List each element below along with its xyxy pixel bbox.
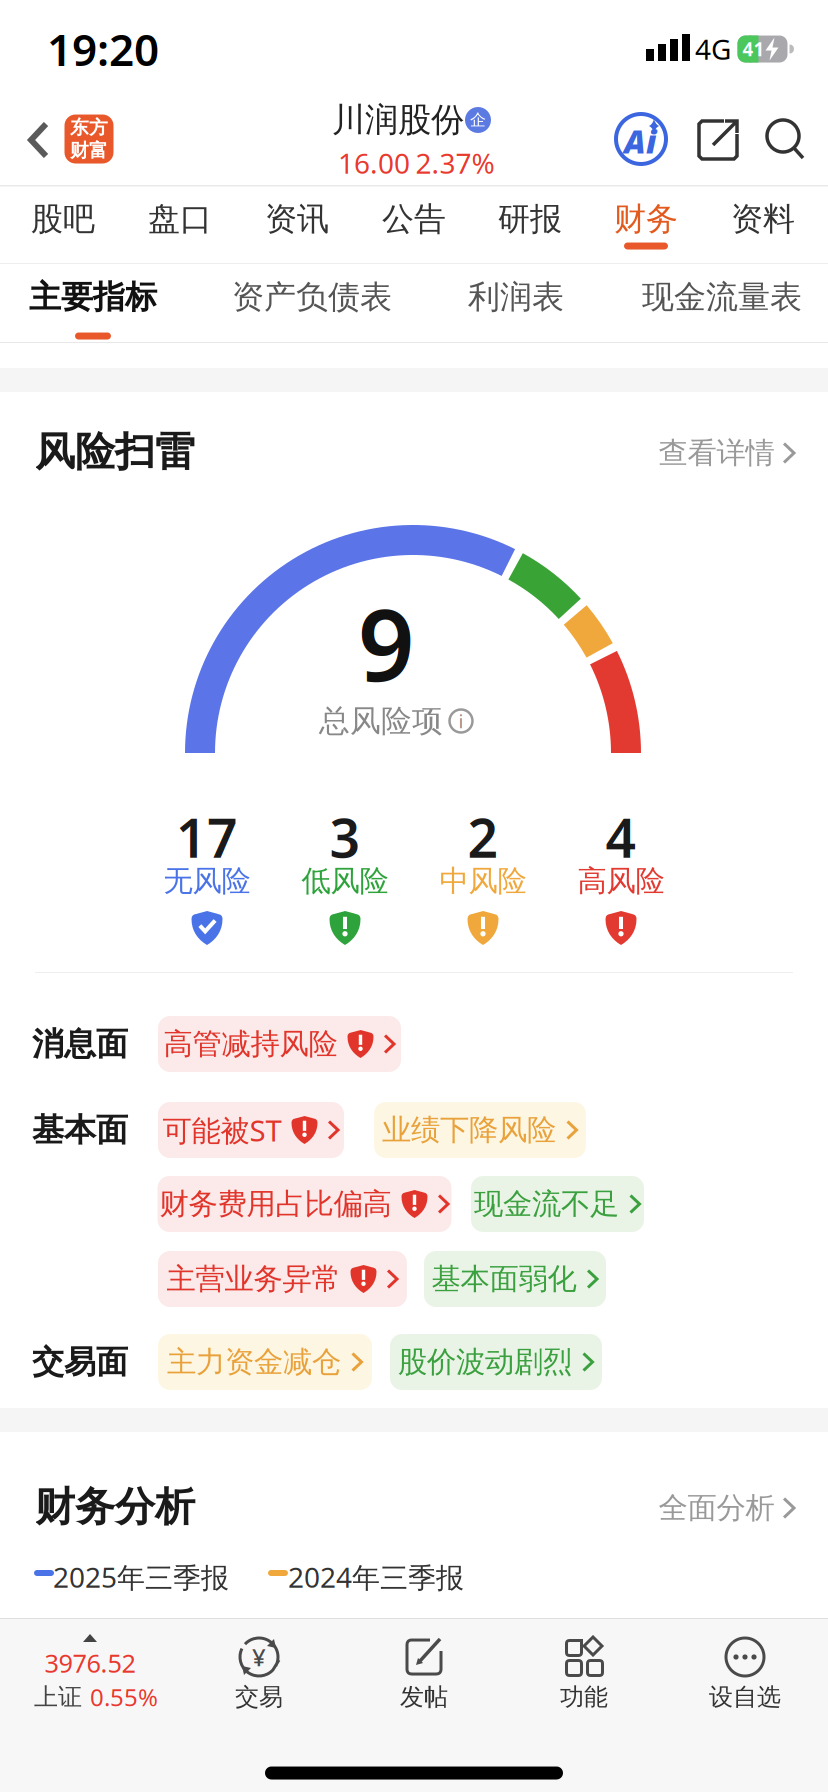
staticText: 基本面 — [32, 1110, 128, 1150]
staticText: 财富 — [70, 139, 108, 162]
staticText: 中风险 — [439, 863, 526, 899]
button[interactable]: 业绩下降风险 — [374, 1102, 586, 1158]
staticText: 财务费用占比偏高 — [159, 1186, 391, 1222]
staticText: 财务 — [614, 199, 678, 239]
staticText: 总风险项 — [319, 702, 443, 740]
staticText: 股吧 — [31, 199, 95, 239]
staticText: 高风险 — [577, 863, 664, 899]
staticText: i — [458, 709, 463, 733]
staticText: 无风险 — [163, 863, 250, 899]
staticText: 查看详情 — [658, 435, 774, 471]
button[interactable]: 基本面弱化 — [424, 1251, 606, 1307]
staticText: 上证 — [34, 1682, 82, 1712]
button[interactable]: Search — [765, 118, 807, 160]
staticText: 交易面 — [32, 1342, 128, 1382]
button[interactable]: 主营业务异常 — [158, 1251, 407, 1307]
button[interactable]: 资讯 — [247, 188, 347, 250]
staticText: 4G — [695, 30, 731, 68]
button[interactable]: 现金流量表 — [637, 265, 807, 329]
staticText: 功能 — [560, 1682, 608, 1712]
button[interactable]: 查看详情 — [658, 435, 795, 471]
button[interactable]: 现金流不足 — [471, 1176, 644, 1232]
staticText: 现金流量表 — [642, 277, 802, 317]
staticText: 川润股份 — [332, 99, 464, 140]
staticText: Ai — [624, 120, 656, 162]
staticText: 2 — [467, 802, 498, 872]
staticText: 全面分析 — [658, 1490, 774, 1526]
staticText: 股价波动剧烈 — [398, 1344, 572, 1380]
staticText: 财务分析 — [35, 1482, 195, 1531]
staticText: 可能被ST — [162, 1110, 281, 1149]
staticText: 公告 — [382, 199, 446, 239]
staticText: 9 — [358, 577, 414, 708]
button[interactable]: 利润表 — [431, 265, 601, 329]
staticText: 研报 — [498, 199, 562, 239]
button[interactable]: 公告 — [364, 188, 464, 250]
button[interactable]: 设自选 — [695, 1635, 795, 1711]
button[interactable]: 盘口 — [130, 188, 230, 250]
button[interactable]: 研报 — [480, 188, 580, 250]
button[interactable]: 主要指标 — [13, 265, 173, 329]
button[interactable]: 发帖 — [374, 1635, 474, 1711]
button[interactable]: 总风险项说明 — [448, 708, 474, 734]
staticText: 利润表 — [468, 277, 564, 317]
staticText: 17 — [176, 802, 238, 872]
staticText: 风险扫雷 — [35, 427, 195, 476]
button[interactable]: Share — [696, 118, 740, 162]
button[interactable]: ¥ — [209, 1635, 309, 1711]
staticText: 发帖 — [400, 1682, 448, 1712]
button[interactable]: 高管减持风险 — [158, 1016, 401, 1072]
button[interactable]: 财务费用占比偏高 — [157, 1176, 451, 1232]
staticText: 交易 — [235, 1682, 283, 1712]
staticText: 0.55% — [90, 1681, 158, 1713]
staticText: 3976.52 — [44, 1646, 135, 1680]
staticText: 盘口 — [148, 199, 212, 239]
staticText: 2025年三季报 — [53, 1558, 229, 1596]
button[interactable]: 财务 — [596, 188, 696, 250]
staticText: 19:20 — [47, 20, 159, 78]
staticText: 企 — [470, 110, 486, 130]
button[interactable]: 上证指数 — [17, 1634, 167, 1710]
staticText: 东方 — [70, 116, 108, 139]
button[interactable]: Back — [28, 121, 50, 159]
staticText: 4 — [605, 802, 636, 872]
button[interactable]: 东方财富 — [64, 114, 113, 163]
staticText: 现金流不足 — [474, 1186, 619, 1222]
staticText: 资产负债表 — [232, 277, 392, 317]
staticText: 资讯 — [265, 199, 329, 239]
staticText: 资料 — [731, 199, 795, 239]
staticText: 基本面弱化 — [431, 1261, 576, 1297]
staticText: 16.00 — [338, 144, 410, 182]
staticText: 消息面 — [32, 1024, 128, 1064]
staticText: 设自选 — [709, 1682, 781, 1712]
button[interactable]: 全面分析 — [658, 1490, 795, 1526]
staticText: 业绩下降风险 — [382, 1112, 556, 1148]
button[interactable]: 可能被ST — [158, 1102, 344, 1158]
staticText: 低风险 — [301, 863, 388, 899]
button[interactable]: 资产负债表 — [227, 265, 397, 329]
button[interactable]: 功能 — [534, 1635, 634, 1711]
button[interactable]: 主力资金减仓 — [158, 1334, 372, 1390]
staticText: 2024年三季报 — [288, 1558, 464, 1596]
button[interactable]: 资料 — [713, 188, 813, 250]
staticText: ¥ — [252, 1641, 266, 1673]
staticText: 高管减持风险 — [163, 1026, 337, 1062]
staticText: 主营业务异常 — [166, 1261, 340, 1297]
staticText: 3 — [329, 802, 360, 872]
button[interactable]: Ai — [614, 112, 668, 166]
button[interactable]: 股吧 — [13, 188, 113, 250]
staticText: 主力资金减仓 — [167, 1344, 341, 1380]
staticText: 2.37% — [415, 144, 494, 182]
staticText: 主要指标 — [29, 277, 157, 317]
button[interactable]: 股价波动剧烈 — [390, 1334, 602, 1390]
staticText: 41 — [742, 37, 764, 61]
